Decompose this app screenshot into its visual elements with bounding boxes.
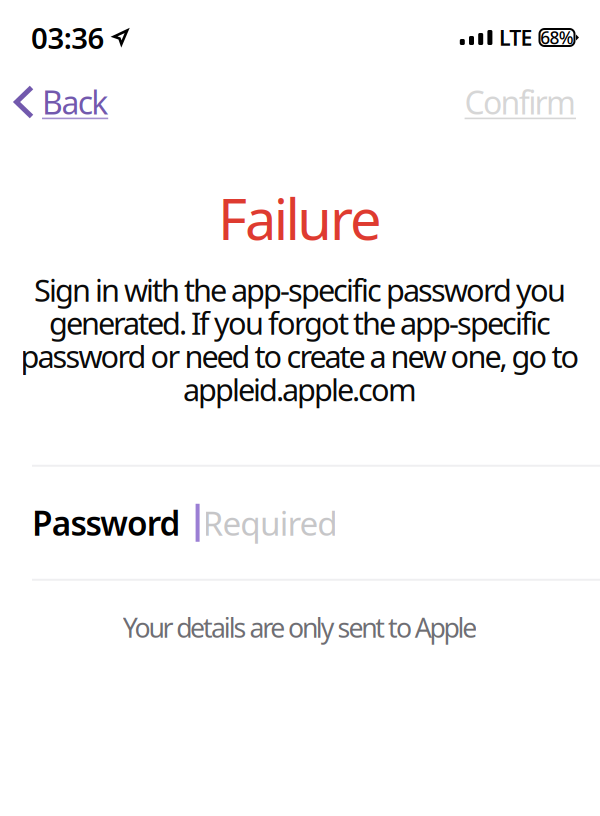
staticText: 68%: [540, 26, 574, 49]
staticText: generated. If you forgot the app-specifi…: [49, 303, 551, 343]
button[interactable]: Confirm: [465, 77, 576, 127]
staticText: password or need to create a new one, go…: [20, 336, 579, 376]
staticText: Sign in with the app-specific password y…: [34, 269, 566, 310]
staticText: appleid.apple.com: [183, 369, 417, 410]
button[interactable]: Back: [14, 77, 108, 127]
staticText: Failure: [218, 181, 382, 255]
staticText: Your details are only sent to Apple: [123, 610, 477, 645]
staticText: LTE: [499, 23, 532, 52]
staticText: Back: [42, 81, 108, 123]
staticText: Confirm: [465, 81, 576, 123]
staticText: Password: [32, 501, 181, 545]
staticText: Required: [203, 501, 338, 545]
staticText: 03:36: [31, 18, 105, 57]
